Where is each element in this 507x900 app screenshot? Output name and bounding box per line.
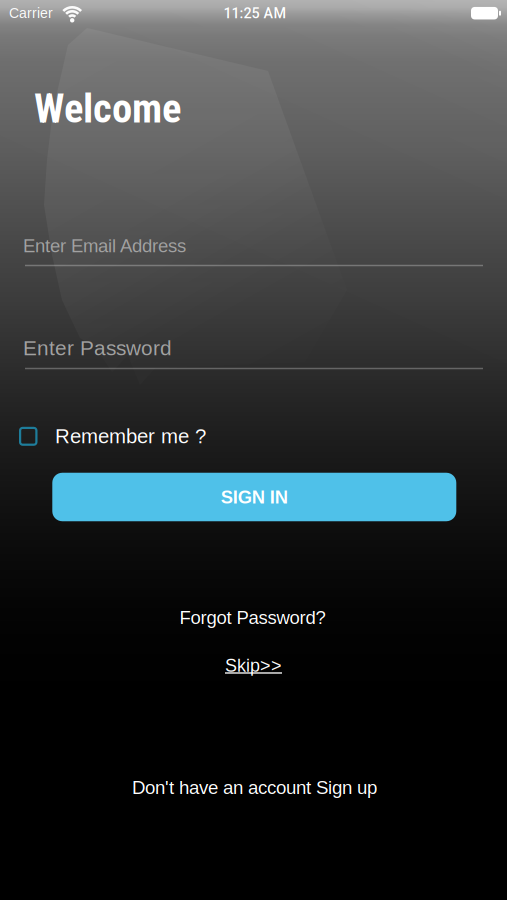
button[interactable]: Forgot Password? [179,607,325,628]
staticText: Welcome [34,85,181,132]
staticText: Skip>> [225,655,282,675]
button[interactable]: Don't have an account Sign up [132,777,377,798]
button[interactable]: Remember me ? [19,419,488,453]
staticText: 11:25 AM [223,5,286,22]
staticText: Forgot Password? [179,607,325,628]
staticText: Carrier [9,5,53,21]
button[interactable]: Skip>> [225,655,282,675]
staticText: Enter Password [23,336,172,360]
staticText: Remember me ? [55,425,206,448]
staticText: Don't have an account Sign up [132,777,377,798]
staticText: Enter Email Address [23,235,186,256]
staticText: SIGN IN [221,487,288,507]
button[interactable]: SIGN IN [52,473,456,521]
